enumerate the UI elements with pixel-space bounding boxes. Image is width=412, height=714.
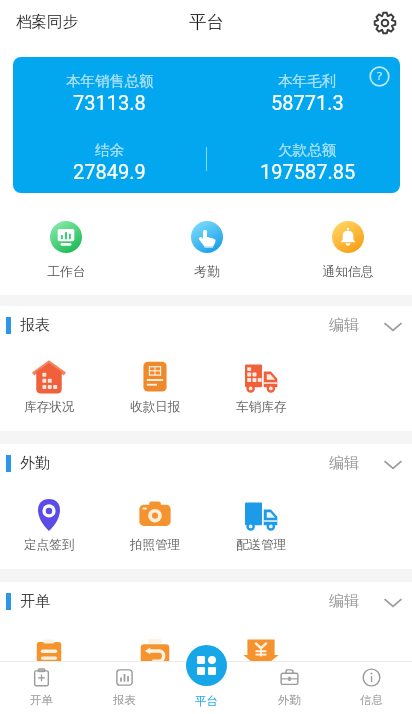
- staticText: 27849.9: [73, 160, 146, 183]
- button[interactable]: 通知信息: [298, 221, 398, 279]
- button[interactable]: 编辑: [329, 316, 402, 335]
- button[interactable]: 开单: [0, 661, 83, 714]
- staticText: 欠款总额: [278, 141, 337, 159]
- staticText: 编辑: [329, 592, 359, 611]
- button[interactable]: 编辑: [329, 592, 402, 611]
- staticText: 外勤: [20, 454, 50, 473]
- button[interactable]: 拍照管理: [102, 498, 208, 569]
- button[interactable]: 信息: [330, 661, 412, 714]
- button[interactable]: 库存状况: [0, 360, 102, 431]
- button[interactable]: [102, 636, 208, 661]
- button[interactable]: 编辑: [329, 454, 402, 473]
- staticText: 编辑: [329, 454, 359, 473]
- button[interactable]: Help: [368, 65, 390, 87]
- staticText: 定点签到: [24, 537, 75, 553]
- staticText: 车销库存: [236, 399, 287, 415]
- button[interactable]: 配送管理: [208, 498, 314, 569]
- staticText: 结余: [95, 141, 125, 159]
- button[interactable]: [0, 636, 102, 661]
- staticText: 配送管理: [236, 537, 287, 553]
- staticText: 编辑: [329, 316, 359, 335]
- staticText: 拍照管理: [130, 537, 181, 553]
- button[interactable]: 工作台: [16, 221, 116, 279]
- staticText: 平台: [195, 694, 218, 708]
- staticText: 收款日报: [130, 399, 181, 415]
- button[interactable]: [208, 636, 314, 661]
- staticText: 信息: [360, 693, 383, 707]
- button[interactable]: 车销库存: [208, 360, 314, 431]
- staticText: 本年毛利: [278, 72, 337, 90]
- staticText: 报表: [20, 316, 50, 335]
- staticText: 58771.3: [271, 91, 344, 114]
- staticText: 开单: [20, 592, 50, 611]
- staticText: 库存状况: [24, 399, 75, 415]
- staticText: 报表: [113, 693, 136, 707]
- button[interactable]: 考勤: [157, 221, 257, 279]
- button[interactable]: 收款日报: [102, 360, 208, 431]
- staticText: 197587.85: [260, 160, 356, 183]
- staticText: 开单: [30, 693, 53, 707]
- staticText: 本年销售总额: [66, 72, 154, 90]
- staticText: 平台: [189, 11, 224, 33]
- button[interactable]: 外勤: [248, 661, 330, 714]
- staticText: 档案同步: [16, 12, 78, 32]
- staticText: ?: [377, 68, 382, 84]
- staticText: 外勤: [278, 693, 301, 707]
- button[interactable]: Settings: [370, 8, 400, 38]
- button[interactable]: 平台: [186, 645, 227, 686]
- staticText: 考勤: [194, 263, 220, 279]
- button[interactable]: 定点签到: [0, 498, 102, 569]
- staticText: 工作台: [47, 263, 86, 279]
- button[interactable]: 报表: [83, 661, 166, 714]
- staticText: 通知信息: [322, 263, 374, 279]
- staticText: 73113.8: [73, 91, 146, 114]
